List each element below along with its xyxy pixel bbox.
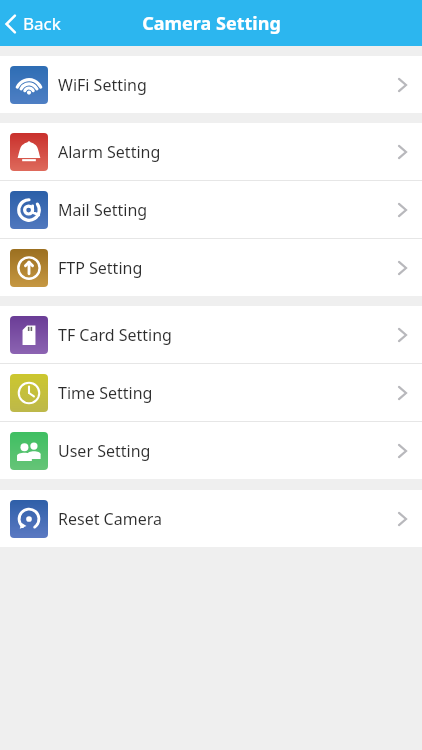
staticText: User Setting <box>58 440 397 462</box>
button[interactable]: TF Card Setting <box>0 306 422 363</box>
staticText: FTP Setting <box>58 257 397 279</box>
staticText: Time Setting <box>58 382 397 404</box>
button[interactable]: Back <box>0 8 71 39</box>
staticText: Back <box>23 12 61 35</box>
staticText: TF Card Setting <box>58 324 397 346</box>
button[interactable]: Reset Camera <box>0 490 422 547</box>
staticText: WiFi Setting <box>58 74 397 96</box>
button[interactable]: FTP Setting <box>0 239 422 296</box>
button[interactable]: Time Setting <box>0 364 422 421</box>
other: Back <box>4 13 18 35</box>
staticText: Reset Camera <box>58 508 397 530</box>
button[interactable]: Alarm Setting <box>0 123 422 180</box>
staticText: Camera Setting <box>142 11 281 36</box>
button[interactable]: User Setting <box>0 422 422 479</box>
button[interactable]: Mail Setting <box>0 181 422 238</box>
staticText: Alarm Setting <box>58 141 397 163</box>
staticText: Mail Setting <box>58 199 397 221</box>
button[interactable]: WiFi Setting <box>0 56 422 113</box>
